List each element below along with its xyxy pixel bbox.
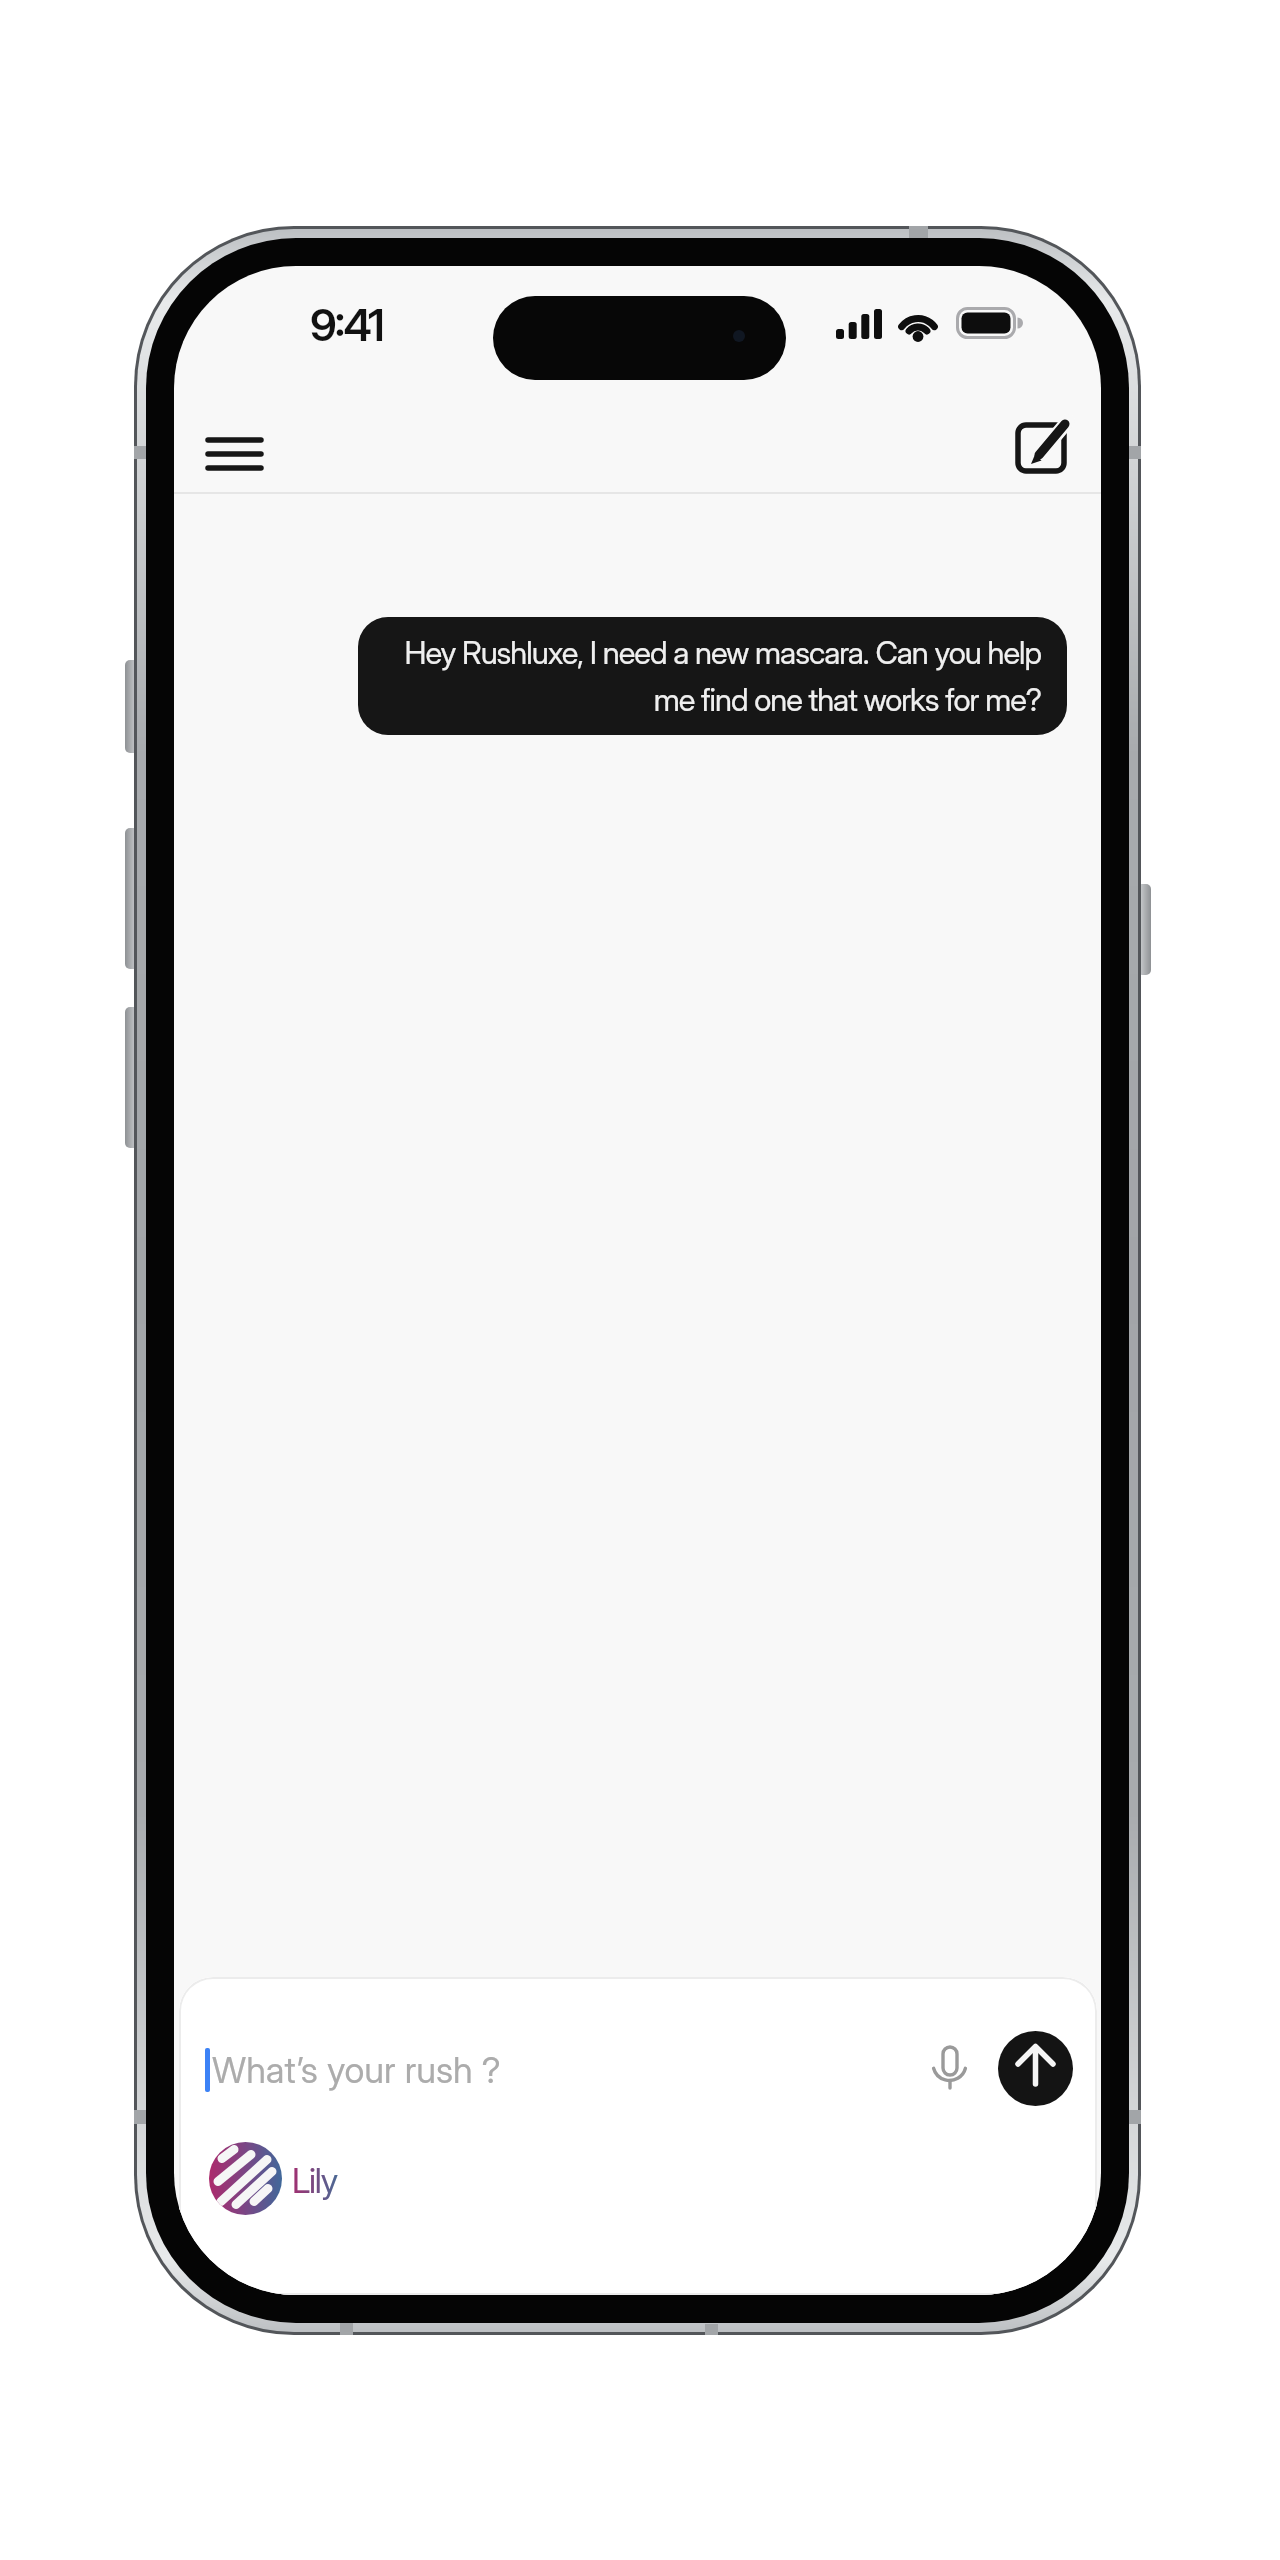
staticText: Hey Rushluxe, I need a new mascara. Can …	[404, 634, 1041, 718]
button[interactable]	[998, 2031, 1073, 2106]
button[interactable]	[198, 424, 272, 486]
button[interactable]	[1002, 411, 1082, 487]
button[interactable]: Lily	[209, 2142, 409, 2216]
button[interactable]	[919, 2035, 979, 2099]
staticText: What’s your rush ?	[212, 2048, 501, 2092]
staticText: Lily	[292, 2160, 337, 2201]
button[interactable]: What’s your rush ?	[212, 2043, 712, 2097]
staticText: 9:41	[310, 298, 383, 350]
